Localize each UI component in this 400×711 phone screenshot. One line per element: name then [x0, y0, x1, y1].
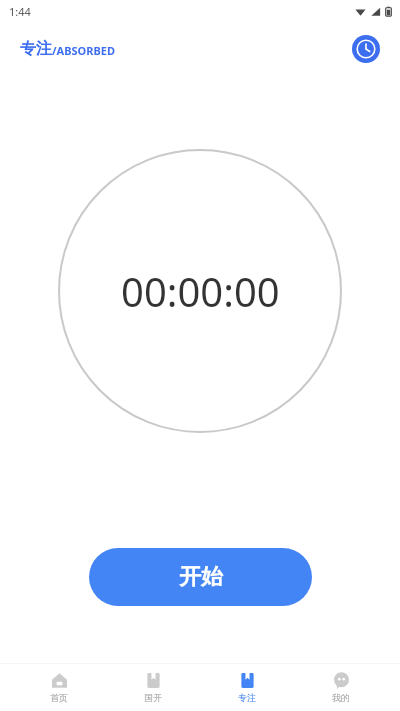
staticText: 国开: [144, 692, 162, 703]
staticText: 专注: [238, 692, 256, 703]
button[interactable]: 我的: [306, 663, 376, 711]
button[interactable]: History: [352, 35, 380, 63]
button[interactable]: 首页: [24, 663, 94, 711]
staticText: 我的: [332, 692, 350, 703]
button[interactable]: 专注: [212, 663, 282, 711]
staticText: 00:00:00: [121, 264, 280, 318]
staticText: 开始: [179, 563, 223, 591]
staticText: /ABSORBED: [52, 43, 115, 58]
button[interactable]: 开始: [89, 548, 312, 606]
staticText: 1:44: [9, 4, 31, 19]
staticText: 专注: [20, 39, 52, 59]
button[interactable]: 国开: [118, 663, 188, 711]
staticText: 首页: [50, 692, 68, 703]
